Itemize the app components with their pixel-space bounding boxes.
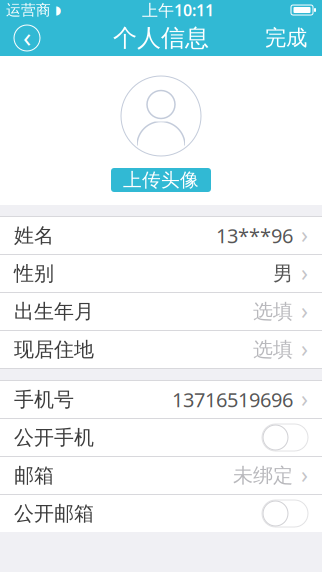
staticText: 公开手机 bbox=[14, 425, 94, 450]
staticText: 13***96 bbox=[216, 222, 293, 249]
staticText: 选填 bbox=[253, 299, 293, 324]
staticText: ◗ bbox=[55, 3, 61, 17]
staticText: › bbox=[301, 219, 308, 249]
button[interactable]: 邮箱 bbox=[0, 457, 322, 495]
staticText: › bbox=[301, 383, 308, 413]
staticText: 13716519696 bbox=[172, 386, 293, 413]
staticText: › bbox=[301, 333, 308, 363]
staticText: 个人信息 bbox=[113, 23, 209, 53]
staticText: 公开邮箱 bbox=[14, 501, 94, 526]
button[interactable]: 出生年月 bbox=[0, 293, 322, 331]
staticText: ‹ bbox=[23, 19, 31, 55]
staticText: › bbox=[301, 295, 308, 325]
button[interactable]: 上传头像 bbox=[111, 168, 211, 192]
staticText: 手机号 bbox=[14, 387, 74, 412]
staticText: 上传头像 bbox=[123, 168, 199, 191]
staticText: 上午10:11 bbox=[142, 0, 214, 21]
button[interactable]: 姓名 bbox=[0, 217, 322, 255]
button[interactable]: Back bbox=[5, 20, 49, 56]
staticText: 运营商 bbox=[6, 1, 51, 19]
button[interactable]: 完成 bbox=[255, 20, 317, 56]
button[interactable]: 现居住地 bbox=[0, 331, 322, 369]
staticText: 性别 bbox=[14, 261, 54, 286]
button[interactable]: 公开手机 bbox=[0, 419, 322, 457]
staticText: 选填 bbox=[253, 337, 293, 362]
staticText: 邮箱 bbox=[14, 463, 54, 488]
staticText: › bbox=[301, 459, 308, 489]
staticText: 未绑定 bbox=[233, 463, 293, 488]
staticText: 完成 bbox=[265, 25, 307, 51]
button[interactable]: 手机号 bbox=[0, 381, 322, 419]
staticText: 姓名 bbox=[14, 223, 54, 248]
staticText: › bbox=[301, 257, 308, 287]
staticText: 男 bbox=[273, 261, 293, 286]
staticText: 出生年月 bbox=[14, 299, 94, 324]
button[interactable]: 公开邮箱 bbox=[0, 495, 322, 532]
staticText: 现居住地 bbox=[14, 337, 94, 362]
button[interactable]: 性别 bbox=[0, 255, 322, 293]
